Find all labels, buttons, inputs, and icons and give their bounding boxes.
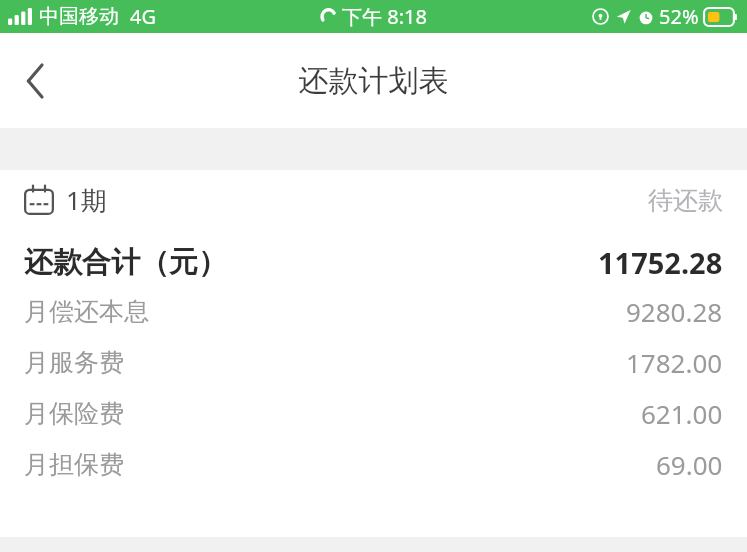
staticText: 月担保费 — [24, 449, 124, 480]
staticText: 69.00 — [656, 447, 723, 482]
staticText: 月服务费 — [24, 347, 124, 378]
staticText: 中国移动 — [39, 4, 119, 29]
staticText: 9280.28 — [626, 294, 723, 329]
staticText: 下午 8:18 — [342, 3, 427, 30]
staticText: 1期 — [66, 182, 107, 218]
staticText: 621.00 — [641, 396, 723, 431]
staticText: 还款合计（元） — [24, 244, 227, 281]
staticText: 月保险费 — [24, 398, 124, 429]
staticText: 4G — [130, 3, 156, 30]
staticText: 待还款 — [648, 185, 723, 216]
staticText: 还款计划表 — [0, 62, 747, 100]
staticText: 月偿还本息 — [24, 296, 149, 327]
staticText: 52% — [659, 3, 699, 30]
staticText: 1782.00 — [626, 345, 723, 380]
button[interactable]: 1期 — [0, 170, 747, 230]
staticText: 11752.28 — [598, 243, 723, 282]
button[interactable]: Back — [0, 45, 72, 117]
